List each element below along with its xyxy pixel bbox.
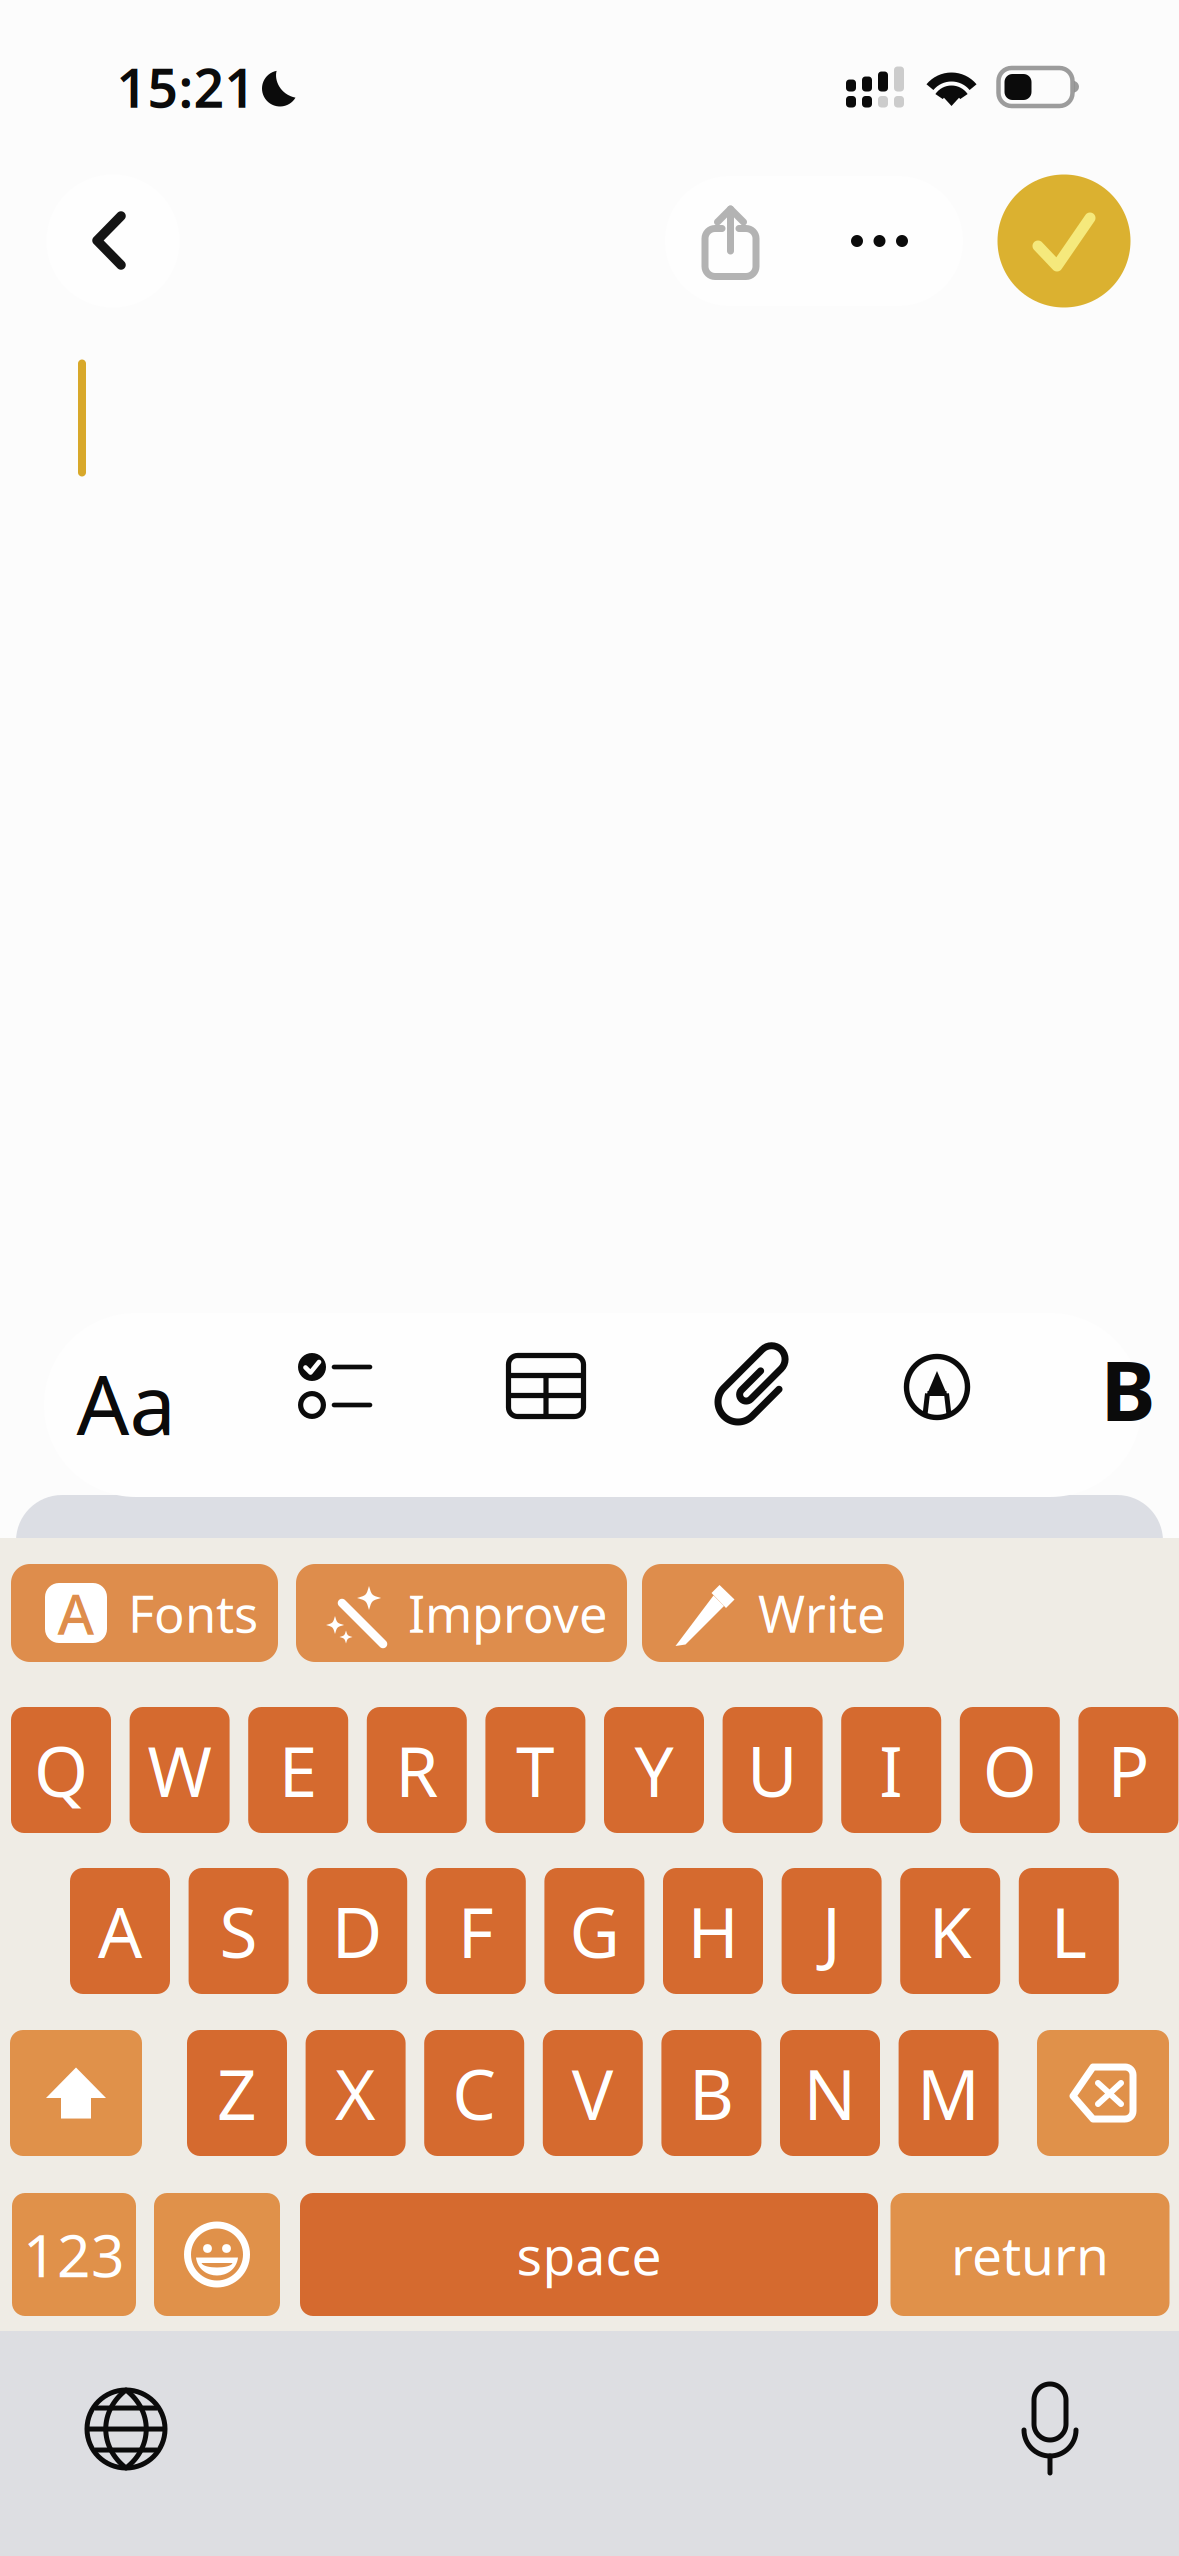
button[interactable]: H [663, 1868, 763, 1994]
staticText: B [689, 2047, 734, 2139]
button[interactable]: return [890, 2193, 1169, 2316]
staticText: H [687, 1885, 738, 1977]
staticText: A [98, 1885, 142, 1977]
button[interactable]: Dictate [985, 2364, 1115, 2494]
staticText: N [803, 2047, 856, 2139]
button[interactable]: D [307, 1868, 407, 1994]
button[interactable]: Format [51, 1323, 201, 1483]
button[interactable]: Attach file [674, 1307, 824, 1467]
button[interactable]: F [426, 1868, 526, 1994]
button[interactable]: Write [642, 1564, 904, 1662]
button[interactable]: X [306, 2030, 406, 2156]
staticText: G [569, 1885, 619, 1977]
button[interactable]: A [11, 1564, 278, 1662]
staticText: R [395, 1724, 438, 1816]
button[interactable]: G [544, 1868, 644, 1994]
staticText: U [747, 1724, 798, 1816]
staticText: J [822, 1885, 841, 1977]
staticText: T [516, 1724, 555, 1816]
button[interactable]: More options [796, 176, 963, 306]
staticText: O [983, 1724, 1037, 1816]
button[interactable]: R [367, 1707, 467, 1833]
staticText: Y [634, 1724, 673, 1816]
button[interactable]: Y [604, 1707, 704, 1833]
staticText: P [1107, 1724, 1149, 1816]
staticText: I [879, 1724, 903, 1816]
staticText: space [516, 2219, 661, 2290]
button[interactable]: N [780, 2030, 880, 2156]
button[interactable]: M [899, 2030, 999, 2156]
staticText: Improve [408, 1579, 608, 1647]
button[interactable]: Next keyboard [61, 2364, 191, 2494]
button[interactable]: E [248, 1707, 348, 1833]
button[interactable]: C [424, 2030, 524, 2156]
button[interactable]: Table [471, 1306, 621, 1466]
staticText: K [929, 1885, 972, 1977]
button[interactable]: Shift [10, 2030, 142, 2156]
button[interactable]: Delete [1037, 2030, 1169, 2156]
button[interactable]: O [960, 1707, 1060, 1833]
button[interactable]: L [1019, 1868, 1119, 1994]
staticText: B [1100, 1334, 1155, 1444]
button[interactable]: B [661, 2030, 761, 2156]
staticText: Aa [76, 1348, 175, 1458]
staticText: Z [217, 2047, 257, 2139]
button[interactable]: space [300, 2193, 878, 2316]
button[interactable]: Back [46, 174, 179, 307]
staticText: D [332, 1885, 383, 1977]
staticText: 15:21 [116, 52, 255, 122]
button[interactable]: K [900, 1868, 1000, 1994]
button[interactable]: Emoji [154, 2193, 280, 2316]
staticText: E [279, 1724, 318, 1816]
button[interactable]: P [1078, 1707, 1178, 1833]
staticText: Write [758, 1579, 886, 1647]
staticText: return [951, 2219, 1109, 2290]
staticText: Q [34, 1724, 88, 1816]
staticText: W [148, 1724, 212, 1816]
staticText: S [220, 1885, 258, 1977]
button[interactable]: Done [997, 174, 1130, 307]
staticText: C [452, 2047, 496, 2139]
button[interactable]: A [70, 1868, 170, 1994]
button[interactable]: J [782, 1868, 882, 1994]
staticText: F [458, 1885, 494, 1977]
staticText: X [335, 2047, 376, 2139]
button[interactable]: W [130, 1707, 230, 1833]
button[interactable]: V [543, 2030, 643, 2156]
button[interactable]: S [189, 1868, 289, 1994]
staticText: 123 [23, 2215, 125, 2293]
button[interactable]: Improve [296, 1564, 627, 1662]
button[interactable]: 123 [12, 2193, 136, 2316]
button[interactable]: U [723, 1707, 823, 1833]
staticText: M [917, 2047, 980, 2139]
button[interactable]: T [485, 1707, 585, 1833]
button[interactable]: Share [665, 176, 796, 306]
button[interactable]: Draw [862, 1307, 1012, 1467]
staticText: Fonts [128, 1579, 258, 1647]
button[interactable]: Z [187, 2030, 287, 2156]
button[interactable]: Q [11, 1707, 111, 1833]
button[interactable]: I [841, 1707, 941, 1833]
staticText: V [572, 2047, 614, 2139]
staticText: L [1051, 1885, 1087, 1977]
button[interactable]: Bold [1090, 1309, 1166, 1469]
staticText: A [57, 1576, 94, 1650]
button[interactable]: Checklist [260, 1306, 410, 1466]
